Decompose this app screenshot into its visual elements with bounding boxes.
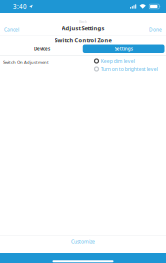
staticText: Customize [71,238,95,245]
staticText: Keep dim level [101,58,135,64]
staticText: Back [79,19,87,24]
staticText: Turn on to brightest level [101,66,158,72]
button[interactable]: Devices [1,44,83,53]
button[interactable]: Turn on to brightest level [94,65,165,73]
button[interactable]: Cancel [0,23,23,36]
button[interactable]: Keep dim level [94,57,165,65]
staticText: Switch On Adjustment [3,59,49,65]
button[interactable]: Customize [0,236,166,247]
button[interactable]: Settings [83,44,165,53]
staticText: 3:40 [13,2,27,11]
staticText: Settings [115,46,133,52]
staticText: Done [149,26,162,33]
button[interactable]: Done [145,23,166,36]
staticText: Cancel [4,26,19,33]
staticText: Devices [34,46,50,52]
staticText: Adjust Settings [61,24,104,32]
staticText: Switch Control Zone [54,36,111,44]
